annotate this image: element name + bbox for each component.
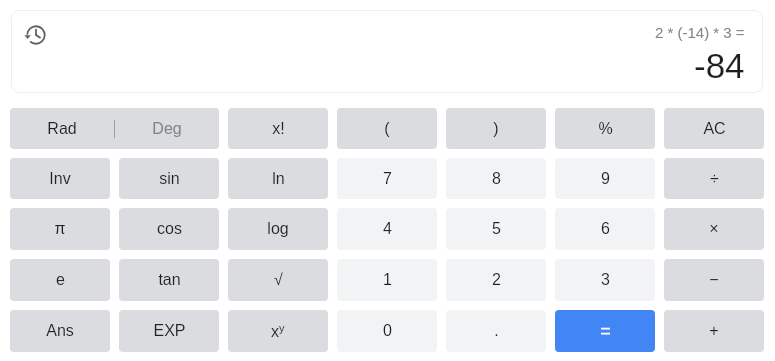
button[interactable]: √: [228, 259, 328, 301]
button[interactable]: 1: [337, 259, 437, 301]
staticText: sin: [159, 170, 180, 188]
staticText: 5: [492, 220, 501, 238]
staticText: 8: [492, 170, 501, 188]
staticText: 7: [383, 170, 392, 188]
button[interactable]: e: [10, 259, 110, 301]
staticText: tan: [158, 271, 181, 289]
button[interactable]: sin: [119, 158, 219, 199]
staticText: e: [56, 271, 65, 289]
staticText: x!: [272, 120, 285, 138]
button[interactable]: −: [664, 259, 764, 301]
button[interactable]: ×: [664, 208, 764, 250]
button[interactable]: =: [555, 310, 655, 352]
staticText: ×: [709, 220, 719, 238]
staticText: EXP: [153, 322, 186, 340]
staticText: =: [600, 321, 611, 341]
staticText: cos: [157, 220, 182, 238]
button[interactable]: log: [228, 208, 328, 250]
staticText: 2: [492, 271, 501, 289]
staticText: .: [494, 322, 499, 340]
staticText: 4: [383, 220, 392, 238]
staticText: 2 * (-14) * 3 =: [655, 24, 745, 41]
staticText: −: [709, 271, 719, 289]
staticText: Rad: [47, 120, 77, 138]
staticText: 9: [601, 170, 610, 188]
button[interactable]: x!: [228, 108, 328, 149]
button[interactable]: AC: [664, 108, 764, 149]
staticText: π: [54, 220, 66, 238]
button[interactable]: xy: [228, 310, 328, 352]
staticText: Deg: [152, 120, 182, 138]
staticText: Ans: [46, 322, 74, 340]
button[interactable]: ): [446, 108, 546, 149]
staticText: ): [493, 120, 499, 138]
button[interactable]: 5: [446, 208, 546, 250]
staticText: Inv: [49, 170, 71, 188]
button[interactable]: tan: [119, 259, 219, 301]
button[interactable]: 9: [555, 158, 655, 199]
button[interactable]: Rad: [10, 108, 219, 149]
staticText: ln: [272, 170, 285, 188]
staticText: %: [598, 120, 613, 138]
button[interactable]: ÷: [664, 158, 764, 199]
staticText: -84: [694, 46, 745, 85]
staticText: xy: [271, 322, 285, 340]
staticText: ÷: [710, 170, 719, 188]
staticText: +: [709, 322, 719, 340]
button[interactable]: EXP: [119, 310, 219, 352]
staticText: 1: [383, 271, 392, 289]
button[interactable]: π: [10, 208, 110, 250]
staticText: 3: [601, 271, 610, 289]
button[interactable]: 7: [337, 158, 437, 199]
staticText: 6: [601, 220, 610, 238]
button[interactable]: +: [664, 310, 764, 352]
staticText: √: [274, 271, 283, 289]
button[interactable]: 4: [337, 208, 437, 250]
button[interactable]: History: [24, 23, 48, 47]
staticText: AC: [703, 120, 726, 138]
button[interactable]: cos: [119, 208, 219, 250]
button[interactable]: 0: [337, 310, 437, 352]
button[interactable]: (: [337, 108, 437, 149]
staticText: (: [384, 120, 390, 138]
button[interactable]: 6: [555, 208, 655, 250]
button[interactable]: Inv: [10, 158, 110, 199]
button[interactable]: 8: [446, 158, 546, 199]
button[interactable]: 3: [555, 259, 655, 301]
button[interactable]: ln: [228, 158, 328, 199]
button[interactable]: Ans: [10, 310, 110, 352]
staticText: 0: [383, 322, 392, 340]
staticText: log: [267, 220, 289, 238]
button[interactable]: 2: [446, 259, 546, 301]
button[interactable]: .: [446, 310, 546, 352]
button[interactable]: %: [555, 108, 655, 149]
